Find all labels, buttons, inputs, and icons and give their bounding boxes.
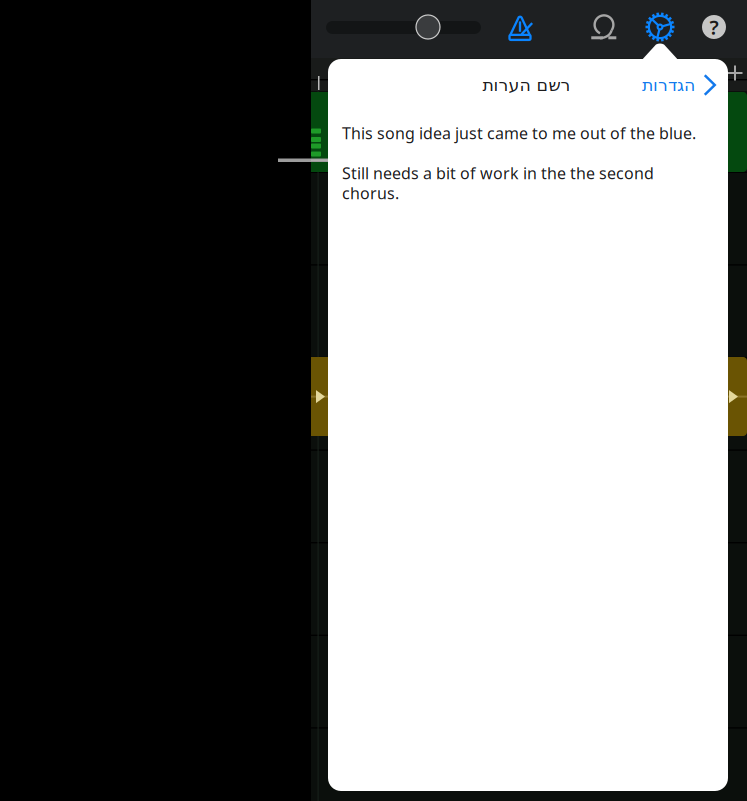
staticText: ? [709, 14, 718, 40]
staticText: רשם הערות [482, 75, 570, 95]
staticText: הגדרות [641, 75, 694, 95]
button[interactable]: Settings [0, 0, 747, 801]
button[interactable]: Help [0, 0, 747, 801]
staticText: This song idea just came to me out of th… [342, 122, 696, 144]
button[interactable]: Metronome [0, 0, 747, 801]
button[interactable]: Add track [0, 0, 747, 801]
staticText: chorus. [342, 182, 399, 204]
button[interactable]: הגדרות [632, 66, 728, 104]
staticText: Still needs a bit of work in the the sec… [342, 162, 654, 184]
button[interactable]: Cycle [0, 0, 747, 801]
button[interactable]: Master volume [0, 0, 747, 801]
